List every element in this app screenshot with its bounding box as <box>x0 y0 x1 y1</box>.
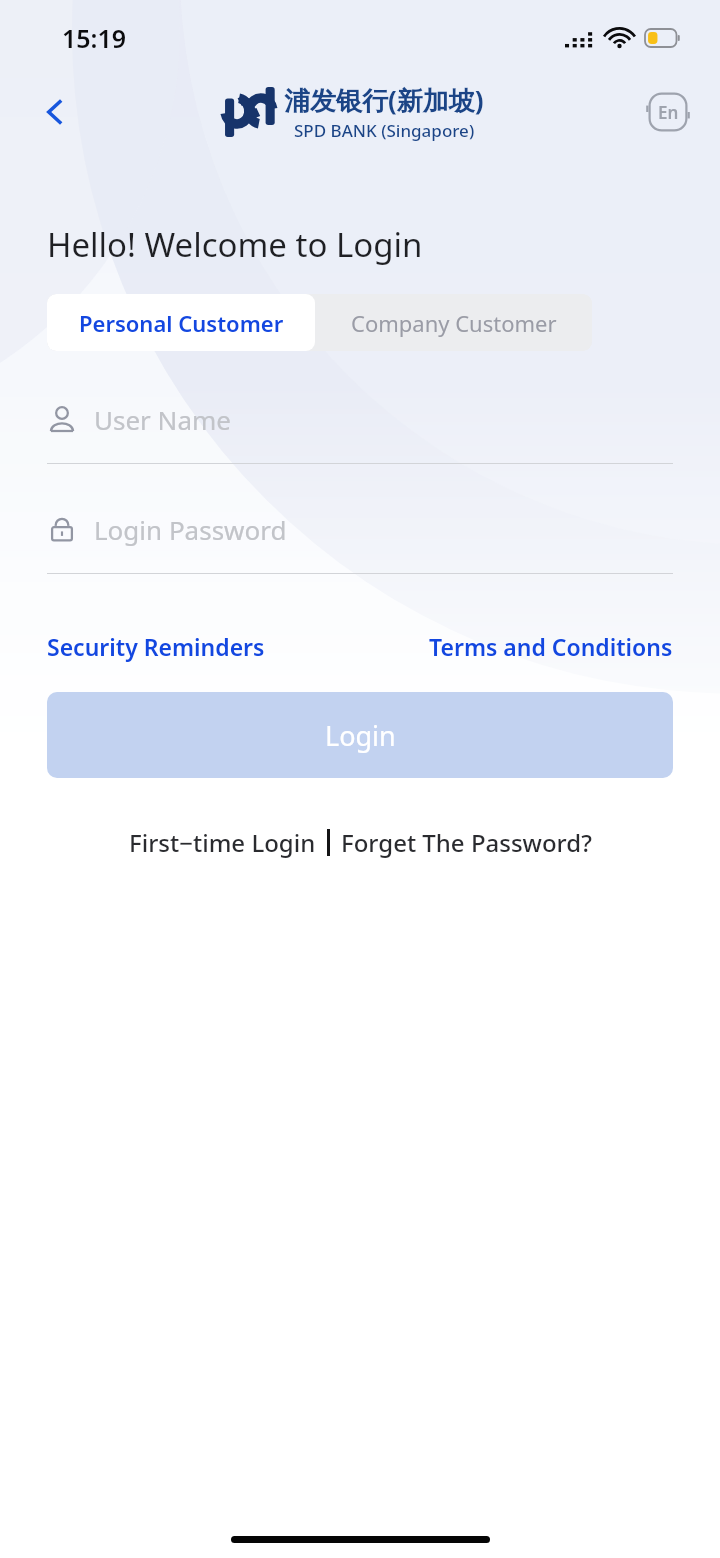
staticText: Company Customer <box>351 308 557 338</box>
staticText: Login Password <box>94 512 287 547</box>
button[interactable]: User Name <box>47 393 673 464</box>
staticText: Personal Customer <box>79 308 284 338</box>
staticText: User Name <box>94 402 231 437</box>
button[interactable]: Login Password <box>47 503 673 574</box>
staticText: Forget The Password? <box>341 826 592 859</box>
button[interactable]: Login <box>47 692 673 778</box>
staticText: En <box>658 101 679 124</box>
staticText: Terms and Conditions <box>429 631 673 662</box>
button[interactable]: Terms and Conditions <box>429 631 673 662</box>
staticText: Login <box>325 717 396 754</box>
button[interactable]: Personal Customer <box>47 294 315 351</box>
staticText: SPD BANK (Singapore) <box>294 119 475 142</box>
staticText: 15:19 <box>62 21 127 55</box>
staticText: First−time Login <box>129 826 316 859</box>
button[interactable]: Back <box>28 84 84 140</box>
button[interactable]: Security Reminders <box>47 631 265 662</box>
staticText: Hello! Welcome to Login <box>47 222 423 267</box>
button[interactable]: Language: English <box>642 86 694 138</box>
staticText: 浦发银行(新加坡) <box>284 82 484 118</box>
button[interactable]: First−time Login <box>129 826 316 859</box>
staticText: Security Reminders <box>47 631 265 662</box>
button[interactable]: Company Customer <box>315 294 592 351</box>
button[interactable]: Forget The Password? <box>341 826 592 859</box>
